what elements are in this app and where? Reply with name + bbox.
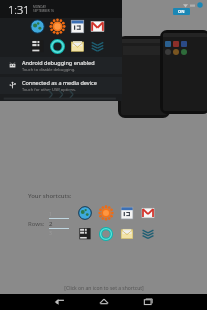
button[interactable]: Calendar: [119, 205, 135, 221]
button[interactable]: Ring: [49, 38, 66, 55]
button[interactable]: Recents: [141, 295, 155, 309]
staticText: MONDAY: [33, 5, 46, 9]
staticText: Rows:: [28, 220, 45, 228]
staticText: [Click on an icon to set a shortcut]: [64, 285, 144, 292]
button[interactable]: Sun: [49, 18, 66, 35]
button[interactable]: Calculator: [77, 226, 93, 242]
button[interactable]: Home: [97, 295, 111, 309]
staticText: Connected as a media device: [22, 79, 97, 86]
button[interactable]: Chevron: [140, 226, 156, 242]
button[interactable]: Browser: [29, 18, 46, 35]
button[interactable]: ON: [173, 8, 190, 15]
button[interactable]: Ring: [98, 226, 114, 242]
staticText: 1:31: [8, 2, 30, 17]
button[interactable]: Chevron: [89, 38, 106, 55]
button[interactable]: Back: [53, 295, 67, 309]
button[interactable]: Mail: [69, 38, 86, 55]
button[interactable]: Calculator: [29, 38, 46, 55]
staticText: Android debugging enabled: [22, 59, 95, 66]
button[interactable]: 1: [49, 211, 69, 237]
staticText: ON: [178, 9, 185, 14]
staticText: Touch to disable debugging.: [22, 67, 76, 72]
button[interactable]: Mail: [119, 226, 135, 242]
staticText: Your shortcuts:: [28, 192, 72, 200]
staticText: 2: [49, 220, 69, 228]
staticText: SEPTEMBER 16: [33, 9, 54, 13]
button[interactable]: Gmail: [89, 18, 106, 35]
button[interactable]: Android debugging enabled: [0, 57, 122, 74]
staticText: Touch for other USB options.: [22, 87, 77, 92]
button[interactable]: Sun: [98, 205, 114, 221]
button[interactable]: Gmail: [140, 205, 156, 221]
button[interactable]: Browser: [77, 205, 93, 221]
button[interactable]: Connected as a media device: [0, 77, 122, 94]
button[interactable]: Calendar: [69, 18, 86, 35]
